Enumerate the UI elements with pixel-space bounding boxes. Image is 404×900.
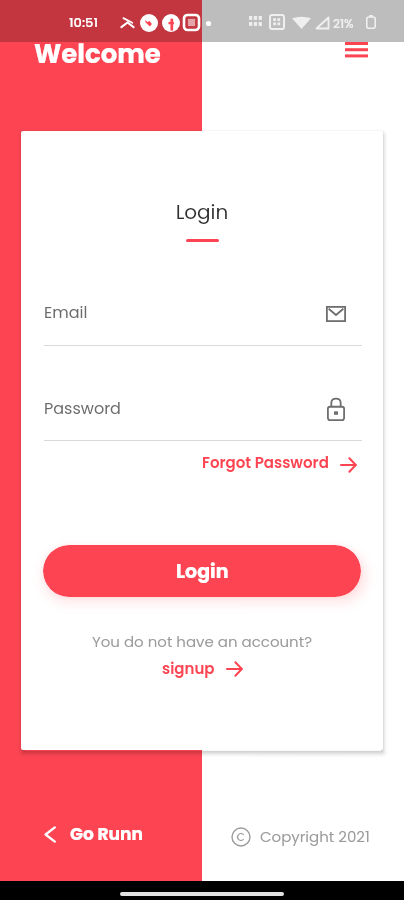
staticText: Login [176, 558, 229, 585]
staticText: Copyright 2021 [260, 826, 370, 847]
staticText: Email [44, 301, 88, 323]
staticText: Login [21, 198, 383, 226]
button[interactable]: signup [156, 654, 249, 683]
staticText: Password [44, 397, 121, 419]
staticText: signup [162, 658, 215, 679]
staticText: 10:51 [69, 13, 98, 31]
button[interactable]: Login [43, 545, 361, 597]
staticText: Go Runn [70, 822, 143, 846]
staticText: Forgot Password [202, 452, 329, 473]
button[interactable]: Menu [336, 30, 376, 70]
staticText: Welcome [34, 36, 161, 72]
button[interactable]: Go Runn [40, 818, 147, 850]
button[interactable]: Forgot Password [198, 447, 361, 478]
staticText: 21% [333, 15, 354, 32]
staticText: You do not have an account? [21, 631, 383, 652]
